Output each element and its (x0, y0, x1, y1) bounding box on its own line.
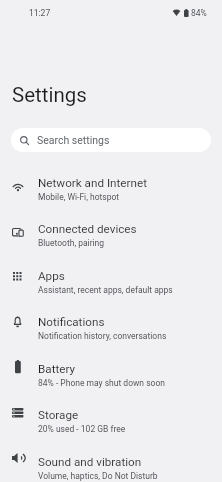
button[interactable]: Battery (0, 351, 222, 398)
staticText: Apps (38, 269, 65, 283)
button[interactable]: Storage (0, 397, 222, 444)
staticText: Assistant, recent apps, default apps (38, 285, 173, 295)
staticText: Network and Internet (38, 176, 147, 190)
button[interactable]: Notifications (0, 304, 222, 351)
button[interactable]: Sound and vibration (0, 444, 222, 482)
staticText: Notification history, conversations (38, 331, 167, 341)
staticText: Connected devices (38, 222, 137, 236)
staticText: Notifications (38, 315, 105, 329)
staticText: Battery (38, 362, 76, 376)
button[interactable]: Connected devices (0, 211, 222, 258)
staticText: Volume, haptics, Do Not Disturb (38, 471, 158, 481)
button[interactable]: Apps (0, 258, 222, 305)
staticText: 11:27 (29, 8, 51, 18)
staticText: Settings (12, 83, 87, 107)
staticText: 20% used - 102 GB free (38, 424, 126, 434)
button[interactable]: Search settings (11, 128, 211, 152)
button[interactable]: Network and Internet (0, 165, 222, 212)
staticText: Search settings (37, 134, 110, 146)
staticText: Mobile, Wi-Fi, hotspot (38, 192, 120, 202)
staticText: Bluetooth, pairing (38, 238, 105, 248)
staticText: 84% (191, 8, 207, 18)
staticText: 84% - Phone may shut down soon (38, 378, 165, 388)
staticText: Sound and vibration (38, 455, 142, 469)
staticText: Storage (38, 408, 79, 422)
